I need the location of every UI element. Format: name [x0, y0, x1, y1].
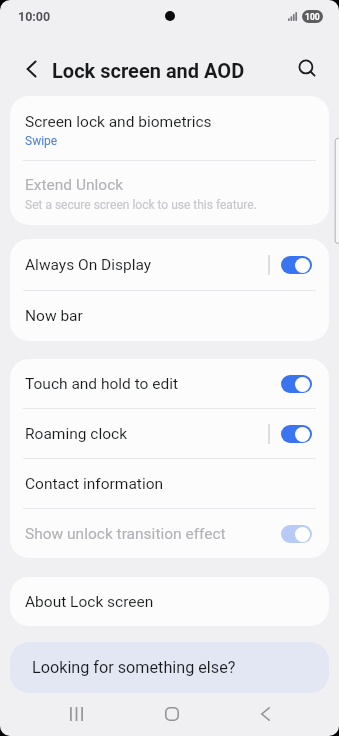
- button[interactable]: About Lock screen: [10, 577, 329, 626]
- button[interactable]: Toggle: [281, 425, 312, 443]
- button[interactable]: Looking for something else?: [10, 642, 329, 693]
- button[interactable]: Recents: [57, 694, 96, 734]
- staticText: Screen lock and biometrics: [25, 113, 212, 131]
- staticText: Now bar: [25, 307, 83, 325]
- staticText: 10:00: [18, 9, 51, 24]
- button[interactable]: Contact information: [10, 459, 329, 508]
- button[interactable]: Search: [291, 52, 325, 86]
- button[interactable]: Always On Display: [10, 239, 329, 290]
- button[interactable]: Show unlock transition effect: [10, 509, 329, 558]
- staticText: Swipe: [25, 134, 58, 148]
- button[interactable]: Now bar: [10, 291, 329, 341]
- staticText: Show unlock transition effect: [25, 525, 226, 543]
- staticText: Lock screen and AOD: [52, 59, 245, 82]
- staticText: Looking for something else?: [32, 658, 236, 677]
- button[interactable]: Back: [246, 694, 285, 734]
- button[interactable]: Back: [14, 52, 48, 86]
- staticText: Extend Unlock: [25, 176, 124, 194]
- staticText: Contact information: [25, 475, 164, 493]
- staticText: About Lock screen: [25, 593, 154, 611]
- button[interactable]: Toggle: [281, 525, 312, 543]
- button[interactable]: Extend Unlock: [10, 161, 329, 225]
- button[interactable]: Home: [152, 694, 191, 734]
- staticText: Touch and hold to edit: [25, 375, 179, 393]
- button[interactable]: Roaming clock: [10, 409, 329, 458]
- button[interactable]: Touch and hold to edit: [10, 359, 329, 408]
- staticText: 100: [305, 12, 320, 22]
- staticText: Always On Display: [25, 256, 152, 274]
- button[interactable]: Toggle: [281, 256, 312, 274]
- button[interactable]: Toggle: [281, 375, 312, 393]
- button[interactable]: Screen lock and biometrics: [10, 96, 329, 160]
- staticText: Roaming clock: [25, 425, 127, 443]
- staticText: Set a secure screen lock to use this fea…: [25, 198, 257, 212]
